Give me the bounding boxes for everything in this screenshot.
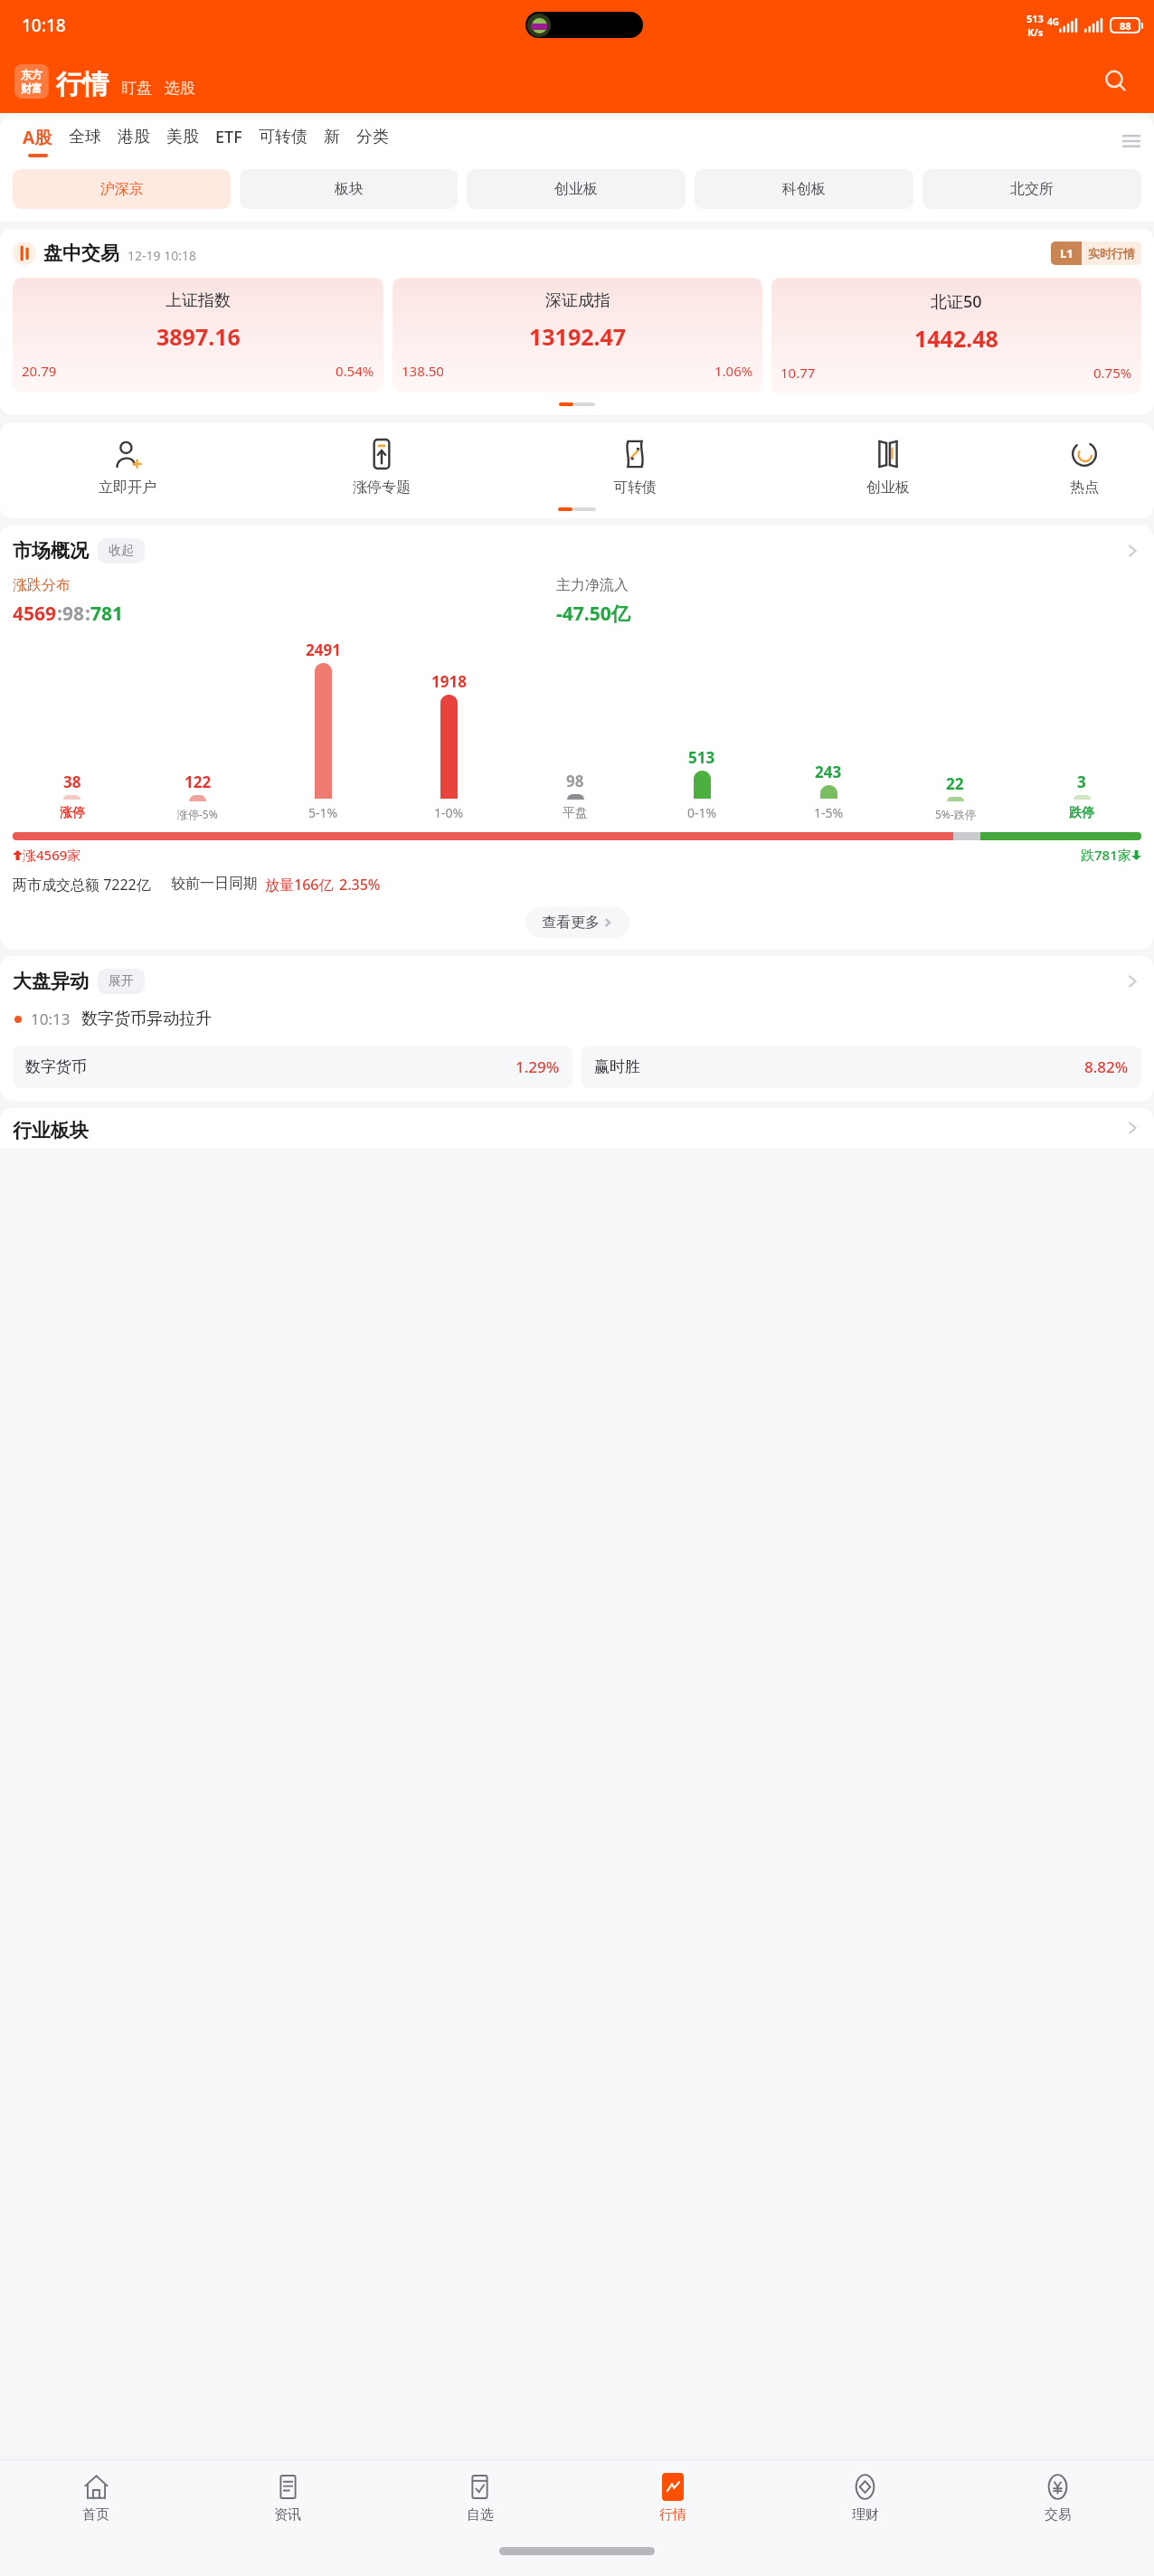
- staticText: 实时行情: [1088, 246, 1135, 260]
- button[interactable]: 板块: [240, 169, 458, 209]
- button[interactable]: 北交所: [922, 169, 1141, 209]
- staticText: 大盘异动: [13, 970, 89, 993]
- staticText: 查看更多: [542, 914, 600, 932]
- button[interactable]: 港股: [109, 127, 158, 156]
- staticText: 两市成交总额 7222亿: [13, 875, 151, 895]
- staticText: 主力净流入: [556, 576, 629, 594]
- button[interactable]: Search: [1096, 62, 1136, 101]
- button[interactable]: 查看更多: [525, 907, 629, 938]
- staticText: 理财: [852, 2506, 879, 2524]
- button[interactable]: 行情: [576, 2460, 769, 2536]
- staticText: L1: [1060, 245, 1074, 261]
- staticText: 创业板: [866, 478, 910, 497]
- staticText: 行情: [659, 2506, 686, 2524]
- staticText: 港股: [118, 127, 150, 147]
- staticText: 513: [688, 747, 715, 768]
- button[interactable]: ETF: [207, 126, 251, 156]
- button[interactable]: 美股: [158, 127, 207, 156]
- staticText: 2.35%: [339, 875, 381, 895]
- staticText: 1918: [431, 671, 467, 692]
- staticText: 全球: [69, 127, 101, 147]
- staticText: 涨停专题: [353, 478, 411, 497]
- staticText: 88: [1120, 19, 1131, 32]
- staticText: 行业板块: [13, 1119, 89, 1142]
- button[interactable]: 首页: [0, 2460, 192, 2536]
- button[interactable]: 盯盘: [121, 79, 152, 98]
- staticText: 98: [566, 771, 584, 791]
- staticText: 513: [1026, 12, 1044, 25]
- staticText: :: [85, 601, 90, 627]
- staticText: 行情: [56, 68, 109, 101]
- button[interactable]: 数字货币: [13, 1046, 572, 1088]
- staticText: 板块: [335, 180, 364, 198]
- staticText: 立即开户: [99, 478, 156, 497]
- button[interactable]: 大盘异动: [13, 969, 1141, 994]
- staticText: 5%-跌停: [935, 807, 976, 821]
- staticText: 4G: [1047, 15, 1059, 28]
- button[interactable]: L1: [1051, 241, 1141, 265]
- button[interactable]: 上证指数: [13, 278, 383, 393]
- button[interactable]: 市场概况: [13, 538, 1141, 563]
- staticText: 分类: [356, 127, 389, 147]
- staticText: 涨4569家: [23, 846, 81, 864]
- staticText: 资讯: [274, 2506, 301, 2524]
- staticText: 1-0%: [434, 804, 464, 821]
- staticText: :: [57, 601, 62, 627]
- button[interactable]: 北证50: [771, 278, 1141, 394]
- staticText: 20.79: [22, 362, 57, 380]
- staticText: 放量166亿: [265, 875, 334, 895]
- staticText: 首页: [82, 2506, 109, 2524]
- staticText: 盘中交易: [43, 241, 119, 265]
- staticText: 深证成指: [545, 290, 610, 311]
- staticText: 781: [90, 601, 124, 627]
- staticText: 自选: [467, 2506, 494, 2524]
- staticText: 交易: [1045, 2506, 1072, 2524]
- button[interactable]: 立即开户: [0, 437, 254, 498]
- button[interactable]: 可转债: [508, 437, 761, 498]
- staticText: 可转债: [613, 478, 657, 497]
- button[interactable]: 行业板块: [13, 1119, 1141, 1142]
- button[interactable]: 资讯: [192, 2460, 383, 2536]
- staticText: 沪深京: [100, 180, 144, 198]
- staticText: 2491: [306, 639, 341, 660]
- staticText: 1.29%: [516, 1056, 560, 1077]
- staticText: 热点: [1070, 478, 1099, 497]
- button[interactable]: 赢时胜: [582, 1046, 1141, 1088]
- button[interactable]: More tabs: [1116, 126, 1147, 156]
- staticText: 243: [815, 762, 842, 782]
- button[interactable]: 热点: [1015, 437, 1154, 498]
- button[interactable]: 创业板: [467, 169, 686, 209]
- button[interactable]: 10:13: [14, 1009, 1140, 1029]
- staticText: 平盘: [563, 805, 588, 821]
- button[interactable]: 自选: [383, 2460, 576, 2536]
- button[interactable]: 创业板: [761, 437, 1015, 498]
- button[interactable]: 深证成指: [393, 278, 762, 393]
- staticText: 12-19 10:18: [128, 247, 196, 264]
- staticText: 跌781家: [1081, 846, 1131, 864]
- staticText: 北证50: [931, 290, 982, 313]
- staticText: 北交所: [1010, 180, 1054, 198]
- button[interactable]: 沪深京: [13, 169, 231, 209]
- button[interactable]: 分类: [348, 127, 397, 156]
- staticText: 跌停: [1069, 805, 1094, 821]
- button[interactable]: 选股: [165, 79, 195, 98]
- button[interactable]: 全球: [61, 127, 109, 156]
- staticText: 涨停: [60, 805, 85, 821]
- staticText: 10.77: [780, 364, 816, 382]
- staticText: 1442.48: [914, 323, 998, 354]
- staticText: 较前一日同期: [171, 875, 258, 893]
- staticText: 3897.16: [156, 321, 241, 352]
- button[interactable]: 新: [316, 127, 348, 156]
- staticText: 3: [1077, 772, 1086, 792]
- staticText: 科创板: [782, 180, 826, 198]
- staticText: 东方: [21, 68, 43, 81]
- staticText: 赢时胜: [594, 1057, 640, 1076]
- staticText: 美股: [166, 127, 199, 147]
- staticText: 13192.47: [529, 321, 627, 352]
- button[interactable]: 理财: [769, 2460, 961, 2536]
- button[interactable]: A股: [14, 126, 61, 157]
- button[interactable]: 交易: [961, 2460, 1154, 2536]
- button[interactable]: 涨停专题: [254, 437, 508, 498]
- button[interactable]: 可转债: [251, 127, 316, 156]
- button[interactable]: 科创板: [695, 169, 913, 209]
